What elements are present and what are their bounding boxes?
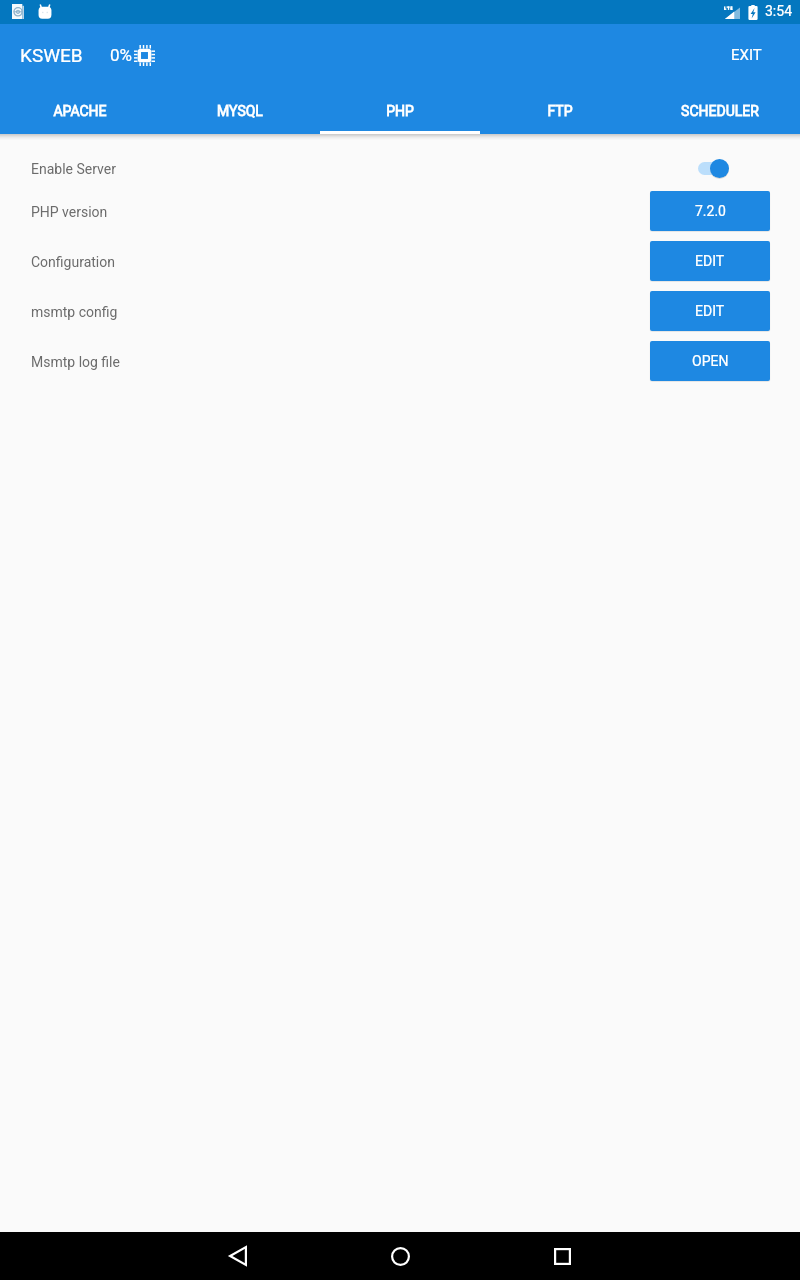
staticText: Msmtp log file (31, 354, 120, 370)
staticText: msmtp config (31, 304, 118, 320)
staticText: MYSQL (217, 103, 263, 119)
staticText: APACHE (53, 103, 107, 119)
staticText: 3:54 (765, 3, 792, 19)
button[interactable]: Back (158, 1232, 318, 1280)
staticText: 0% (110, 45, 133, 65)
staticText: KSWEB (20, 44, 83, 66)
button[interactable]: SCHEDULER (640, 86, 800, 134)
staticText: PHP (386, 103, 414, 119)
staticText: Configuration (31, 254, 115, 270)
button[interactable]: APACHE (0, 86, 160, 134)
staticText: OPEN (692, 353, 729, 369)
button[interactable]: Msmtp log file (0, 336, 800, 386)
button[interactable]: EDIT (650, 291, 770, 331)
button[interactable]: Enable Server (689, 151, 737, 185)
staticText: EDIT (695, 303, 725, 319)
staticText: EXIT (731, 46, 762, 64)
button[interactable]: 7.2.0 (650, 191, 770, 231)
staticText: PHP version (31, 204, 108, 220)
button[interactable]: Configuration (0, 236, 800, 286)
staticText: SCHEDULER (681, 103, 759, 119)
button[interactable]: MYSQL (160, 86, 320, 134)
button[interactable]: Recent apps (482, 1232, 642, 1280)
button[interactable]: EXIT (711, 34, 782, 76)
staticText: Enable Server (31, 161, 116, 177)
button[interactable]: FTP (480, 86, 640, 134)
button[interactable]: Home (320, 1232, 480, 1280)
button[interactable]: msmtp config (0, 286, 800, 336)
button[interactable]: PHP (320, 86, 480, 134)
staticText: 7.2.0 (695, 203, 726, 219)
button[interactable]: PHP version (0, 186, 800, 236)
button[interactable]: Enable Server (0, 142, 800, 194)
button[interactable]: EDIT (650, 241, 770, 281)
staticText: EDIT (695, 253, 725, 269)
button[interactable]: OPEN (650, 341, 770, 381)
other: CPU usage (134, 45, 155, 66)
staticText: FTP (547, 103, 573, 119)
